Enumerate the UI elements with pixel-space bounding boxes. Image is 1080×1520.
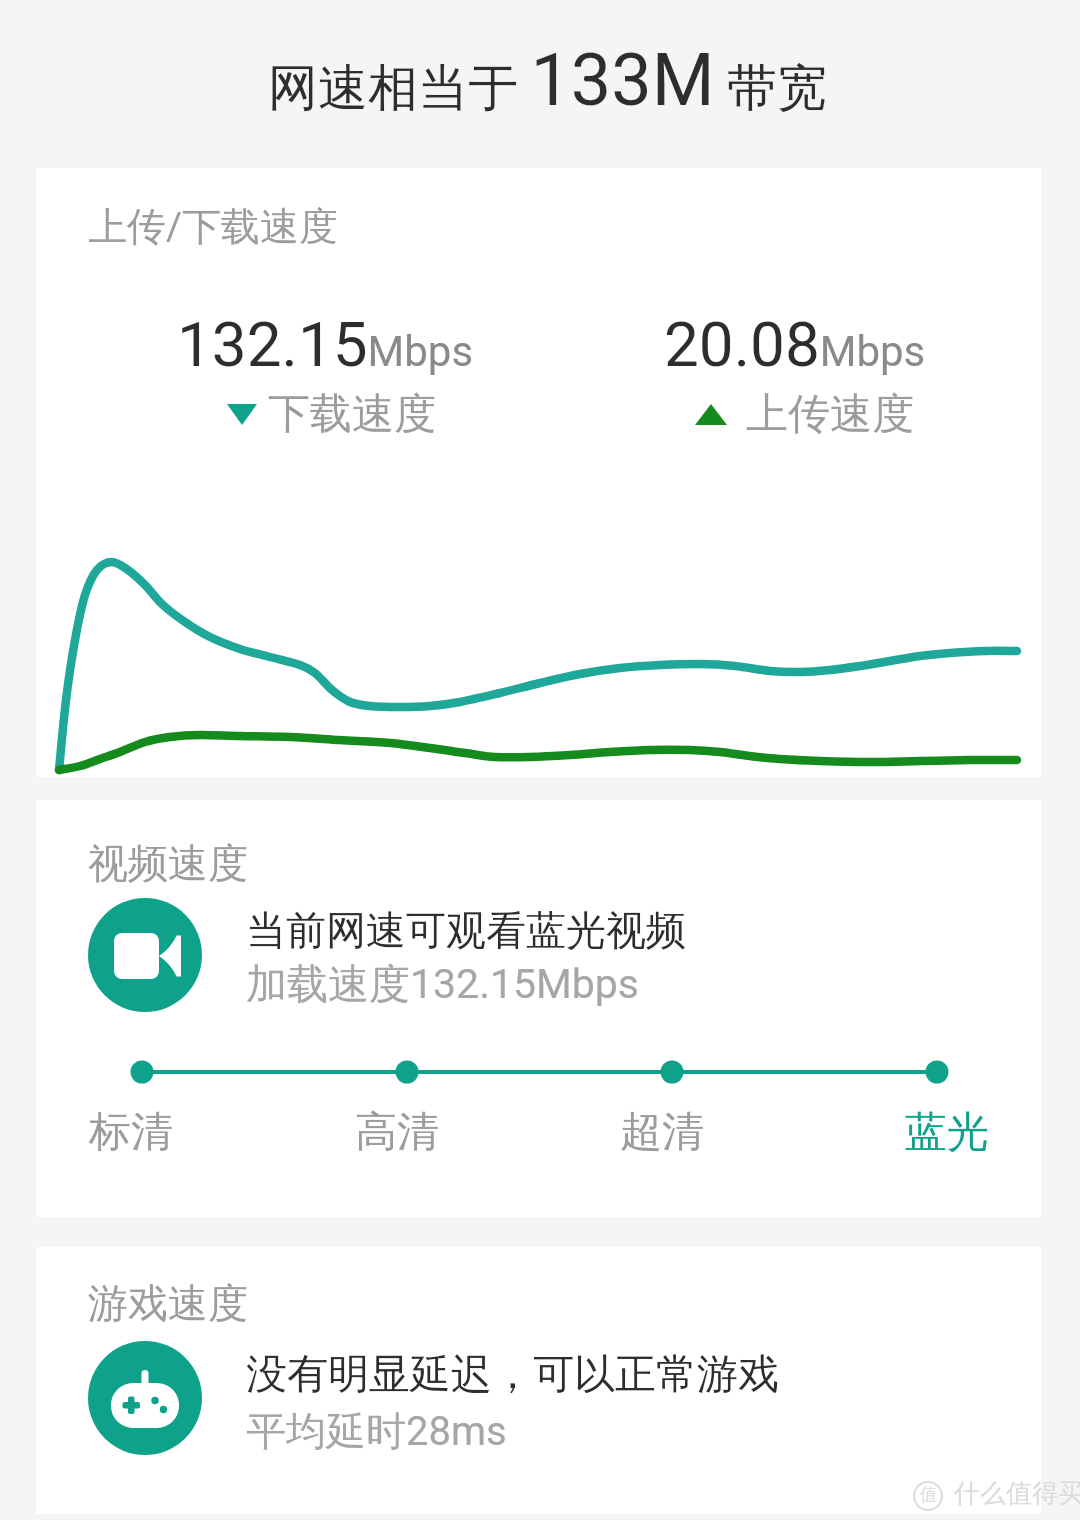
staticText: 网速相当于 133M 带宽 — [268, 38, 828, 122]
staticText: 值 — [920, 1484, 937, 1505]
staticText: 下载速度 — [268, 388, 436, 441]
staticText: 当前网速可观看蓝光视频 — [246, 905, 686, 955]
staticText: 132.15Mbps — [177, 308, 474, 381]
staticText: 视频速度 — [88, 838, 248, 888]
staticText: 上传/下载速度 — [88, 202, 339, 251]
staticText: 蓝光 — [905, 1106, 989, 1159]
staticText: 上传速度 — [746, 388, 914, 441]
staticText: 游戏速度 — [88, 1278, 248, 1328]
staticText: 什么值得买 — [954, 1477, 1080, 1510]
staticText: 平均延时28ms — [246, 1406, 507, 1456]
staticText: 标清 — [89, 1106, 173, 1159]
staticText: 高清 — [355, 1106, 439, 1159]
staticText: 没有明显延迟，可以正常游戏 — [246, 1349, 779, 1401]
staticText: 超清 — [620, 1106, 704, 1159]
staticText: 加载速度132.15Mbps — [246, 959, 640, 1011]
staticText: 20.08Mbps — [664, 308, 926, 381]
